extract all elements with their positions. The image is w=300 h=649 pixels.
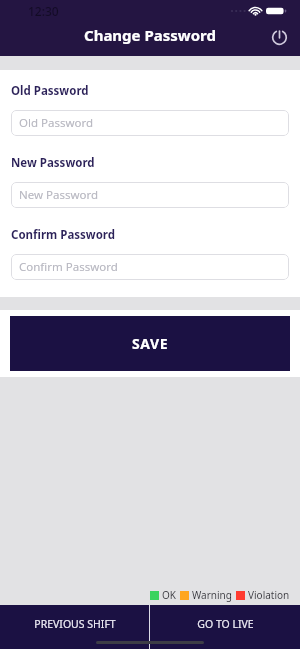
- button[interactable]: GO TO LIVE: [150, 605, 300, 649]
- button[interactable]: Confirm Password: [11, 254, 289, 280]
- staticText: New Password: [19, 187, 99, 203]
- button[interactable]: PREVIOUS SHIFT: [0, 605, 149, 649]
- staticText: Confirm Password: [19, 259, 118, 275]
- staticText: Old Password: [11, 83, 89, 99]
- staticText: OK: [162, 588, 176, 602]
- staticText: Old Password: [19, 115, 94, 131]
- button[interactable]: Old Password: [11, 110, 289, 136]
- staticText: Violation: [248, 588, 290, 602]
- staticText: Confirm Password: [11, 227, 116, 243]
- staticText: New Password: [11, 155, 95, 171]
- staticText: SAVE: [132, 334, 169, 353]
- staticText: Warning: [192, 588, 232, 602]
- staticText: 12:30: [28, 3, 59, 19]
- staticText: Change Password: [84, 25, 216, 45]
- button[interactable]: SAVE: [10, 316, 290, 371]
- staticText: PREVIOUS SHIFT: [34, 617, 116, 631]
- button[interactable]: New Password: [11, 182, 289, 208]
- button[interactable]: Power / Logout: [266, 24, 292, 50]
- staticText: GO TO LIVE: [197, 617, 254, 631]
